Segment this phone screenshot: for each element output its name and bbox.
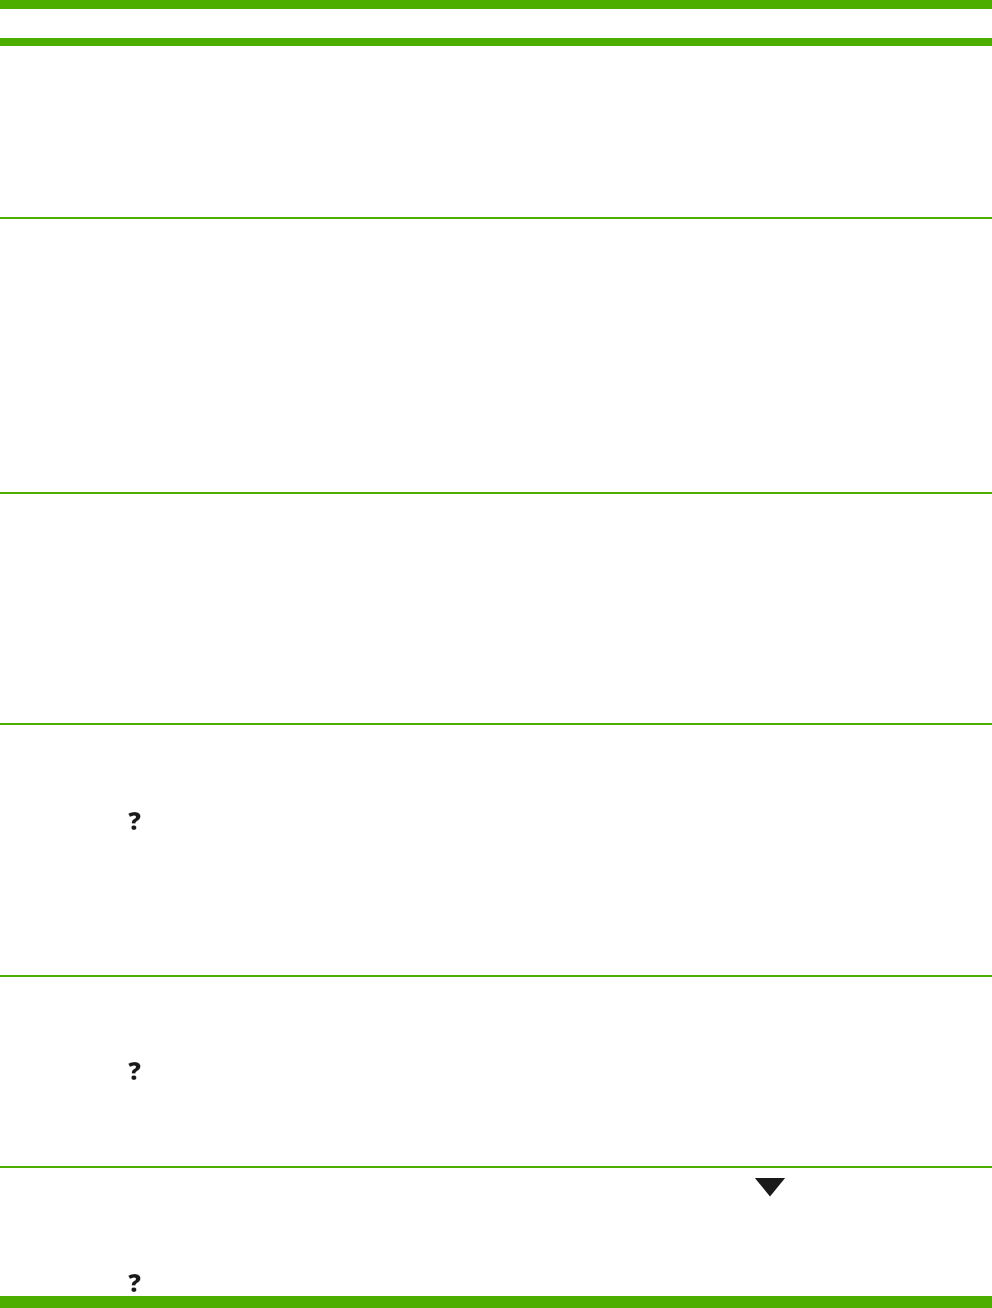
staticText: ?	[128, 1053, 141, 1085]
staticText: ?	[128, 803, 141, 835]
staticText: ?	[128, 1265, 141, 1297]
button[interactable]: Help	[120, 803, 148, 835]
button[interactable]: Help	[120, 1265, 148, 1297]
button[interactable]: Show options	[752, 1172, 788, 1202]
button[interactable]: Help	[120, 1053, 148, 1085]
